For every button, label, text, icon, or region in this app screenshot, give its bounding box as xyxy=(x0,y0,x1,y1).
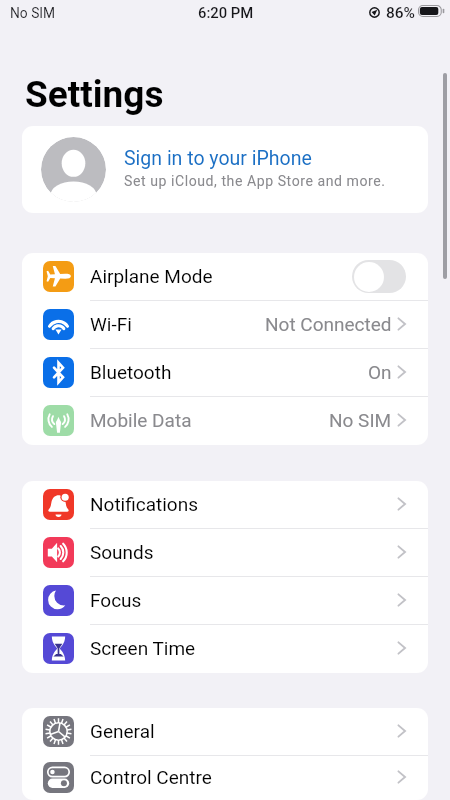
button[interactable]: Mobile Data xyxy=(22,397,428,445)
staticText: General xyxy=(90,720,155,742)
button[interactable]: General xyxy=(22,708,428,756)
button[interactable]: Control Centre xyxy=(22,756,428,800)
button[interactable]: Screen Time xyxy=(22,625,428,673)
button[interactable]: Sign in to your iPhone xyxy=(22,126,428,213)
staticText: Notifications xyxy=(90,493,199,515)
staticText: Not Connected xyxy=(265,313,392,335)
staticText: Sounds xyxy=(90,541,154,563)
staticText: Control Centre xyxy=(90,766,212,788)
button[interactable]: Focus xyxy=(22,577,428,625)
staticText: Sign in to your iPhone xyxy=(124,147,312,170)
other: Location services active xyxy=(369,7,380,18)
staticText: 86% xyxy=(386,4,416,22)
button[interactable]: Airplane Mode toggle xyxy=(352,260,406,293)
button[interactable]: Sounds xyxy=(22,529,428,577)
staticText: Screen Time xyxy=(90,637,196,659)
button[interactable]: Notifications xyxy=(22,481,428,529)
button[interactable]: Bluetooth xyxy=(22,349,428,397)
staticText: Bluetooth xyxy=(90,361,172,383)
staticText: Airplane Mode xyxy=(90,265,213,287)
staticText: On xyxy=(368,361,392,383)
button[interactable]: Wi-Fi xyxy=(22,301,428,349)
staticText: No SIM xyxy=(329,409,392,431)
button[interactable]: Airplane Mode xyxy=(22,253,428,301)
staticText: Settings xyxy=(25,73,164,116)
staticText: No SIM xyxy=(10,5,56,21)
staticText: Mobile Data xyxy=(90,409,192,431)
staticText: Set up iCloud, the App Store and more. xyxy=(124,173,386,190)
staticText: 6:20 PM xyxy=(198,4,254,21)
staticText: Wi-Fi xyxy=(90,313,132,335)
staticText: Focus xyxy=(90,589,142,611)
